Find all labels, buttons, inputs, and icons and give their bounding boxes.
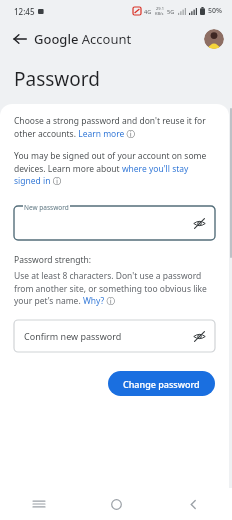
staticText: 29.1 [156, 6, 164, 11]
staticText: New password [24, 203, 69, 212]
staticText: 5G [167, 8, 175, 15]
button[interactable]: Change password [108, 371, 215, 396]
staticText: Confirm new password [24, 330, 122, 342]
button[interactable]: Recent apps [0, 488, 78, 520]
button[interactable]: Confirm new password [14, 320, 215, 352]
staticText: 50% [208, 6, 222, 16]
button[interactable]: Home [78, 488, 155, 520]
staticText: Google Account [34, 30, 132, 48]
staticText: 12:45 [14, 6, 35, 17]
button[interactable]: New password [14, 202, 215, 240]
button[interactable]: Account profile [204, 29, 224, 49]
staticText: Password strength: [14, 254, 92, 266]
button[interactable]: Show password [191, 215, 207, 231]
staticText: KB/s [155, 11, 164, 16]
button[interactable]: Use at least 8 characters. Don't use a p… [14, 270, 215, 306]
button[interactable]: You may be signed out of your account on… [14, 150, 215, 186]
staticText: 4G [144, 8, 152, 15]
button[interactable]: Back [6, 25, 34, 53]
staticText: Password [14, 66, 100, 92]
button[interactable]: Show password [191, 328, 207, 344]
staticText: Change password [123, 378, 200, 390]
button[interactable]: Back [155, 488, 232, 520]
button[interactable]: Choose a strong password and don't reuse… [14, 115, 215, 139]
